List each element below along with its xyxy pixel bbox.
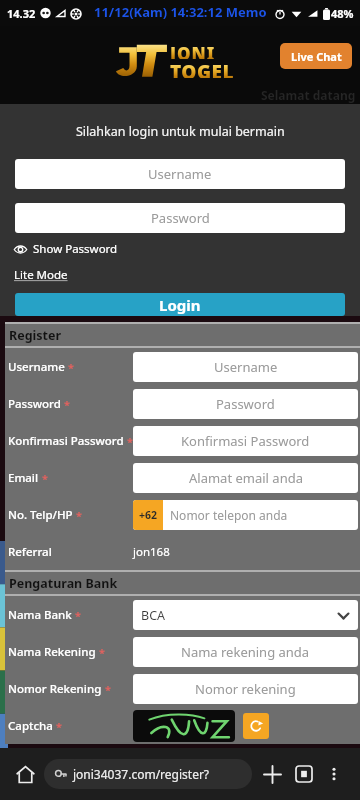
staticText: Nama rekening anda: [181, 643, 310, 661]
staticText: *: [42, 471, 48, 486]
staticText: Username: [8, 359, 65, 375]
staticText: Username: [214, 358, 278, 376]
button[interactable]: Konfirmasi Password: [133, 426, 358, 456]
button[interactable]: Login: [15, 293, 345, 316]
staticText: TOGEL: [170, 59, 235, 78]
other: Pilih bank: [337, 609, 350, 622]
staticText: jon168: [133, 544, 170, 560]
staticText: No. Telp/HP: [8, 507, 73, 523]
staticText: *: [127, 434, 133, 449]
button[interactable]: Alamat email anda: [133, 463, 358, 493]
staticText: +62: [139, 508, 158, 522]
staticText: Pengaturan Bank: [9, 575, 118, 592]
staticText: Nomor Rekening: [8, 681, 102, 697]
button[interactable]: Username: [15, 159, 345, 189]
staticText: Live Chat: [291, 49, 342, 64]
staticText: Show Password: [33, 241, 118, 257]
button[interactable]: Password: [133, 389, 358, 419]
button[interactable]: Tabs: [290, 760, 318, 788]
button[interactable]: +62: [133, 500, 358, 530]
button[interactable]: Nomor rekening: [133, 674, 358, 704]
button[interactable]: New tab: [258, 760, 286, 788]
staticText: Silahkan login untuk mulai bermain: [76, 123, 285, 140]
staticText: Register: [9, 327, 62, 344]
staticText: 48%: [331, 6, 354, 21]
staticText: *: [105, 682, 111, 697]
button[interactable]: Lite Mode: [14, 267, 68, 283]
button[interactable]: joni34037.com/register?referral_co: [44, 759, 252, 789]
staticText: Nama Bank: [8, 607, 72, 623]
staticText: Nomor telepon anda: [170, 507, 288, 523]
button[interactable]: Show Password: [14, 241, 360, 257]
button[interactable]: Password: [15, 203, 345, 233]
button[interactable]: Live Chat: [280, 43, 352, 69]
staticText: Konfirmasi Password: [8, 433, 124, 449]
staticText: Captcha: [8, 718, 53, 734]
staticText: Nomor rekening: [195, 680, 296, 698]
staticText: joni34037.com/register?referral_co: [73, 766, 252, 782]
button[interactable]: Username: [133, 352, 358, 382]
button[interactable]: More options: [320, 760, 348, 788]
staticText: *: [76, 508, 82, 523]
staticText: Password: [151, 209, 210, 227]
staticText: Konfirmasi Password: [181, 432, 310, 450]
button[interactable]: Home: [10, 759, 40, 789]
staticText: Password: [8, 396, 61, 412]
staticText: *: [99, 645, 105, 660]
staticText: Alamat email anda: [189, 469, 303, 487]
staticText: Email: [8, 470, 39, 486]
staticText: *: [64, 397, 70, 412]
staticText: Username: [148, 165, 212, 183]
staticText: Selamat datang: [261, 87, 356, 103]
staticText: Login: [159, 295, 201, 315]
button[interactable]: [133, 710, 235, 742]
staticText: Nama Rekening: [8, 644, 96, 660]
staticText: Password: [216, 395, 275, 413]
button[interactable]: Nama rekening anda: [133, 637, 358, 667]
staticText: 11/12(Kam) 14:32:12 Memo: [94, 3, 267, 21]
button[interactable]: BCA: [133, 600, 358, 630]
staticText: JONI: [170, 42, 216, 59]
staticText: *: [68, 360, 74, 375]
staticText: BCA: [141, 607, 337, 624]
button[interactable]: Refresh captcha: [243, 713, 269, 739]
staticText: 14.32: [7, 6, 36, 21]
staticText: *: [56, 719, 62, 734]
staticText: *: [75, 608, 81, 623]
staticText: Referral: [8, 544, 52, 560]
